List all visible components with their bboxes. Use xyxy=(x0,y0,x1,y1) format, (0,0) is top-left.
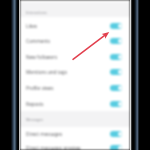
button[interactable]: New followers xyxy=(20,49,130,65)
staticText: New followers xyxy=(26,54,58,60)
staticText: Mentions and tags xyxy=(26,69,67,75)
button[interactable]: New followers toggle xyxy=(110,54,122,60)
staticText: Comments xyxy=(26,38,51,44)
staticText: Direct messages xyxy=(26,131,63,137)
staticText: Interactions xyxy=(26,10,47,15)
staticText: Messages xyxy=(26,117,44,122)
button[interactable]: Reposts toggle xyxy=(110,101,122,107)
staticText: Direct messages preview xyxy=(26,145,81,150)
button[interactable]: Direct messages toggle xyxy=(110,131,122,137)
button[interactable]: Profile views xyxy=(20,80,130,96)
button[interactable]: Mentions and tags toggle xyxy=(110,69,122,75)
button[interactable]: Mentions and tags xyxy=(20,64,130,80)
button[interactable]: Reposts xyxy=(20,96,130,112)
button[interactable]: Likes toggle xyxy=(110,23,122,29)
staticText: Likes xyxy=(26,23,38,29)
button[interactable]: Profile views toggle xyxy=(110,85,122,91)
button[interactable]: Likes xyxy=(20,18,130,34)
button[interactable]: Comments toggle xyxy=(110,38,122,44)
button[interactable]: Direct messages preview xyxy=(20,140,130,150)
staticText: Reposts xyxy=(26,101,44,107)
button[interactable]: Comments xyxy=(20,33,130,49)
button[interactable]: Direct messages preview toggle xyxy=(110,145,122,150)
staticText: Profile views xyxy=(26,85,54,91)
button[interactable]: Direct messages xyxy=(20,126,130,142)
